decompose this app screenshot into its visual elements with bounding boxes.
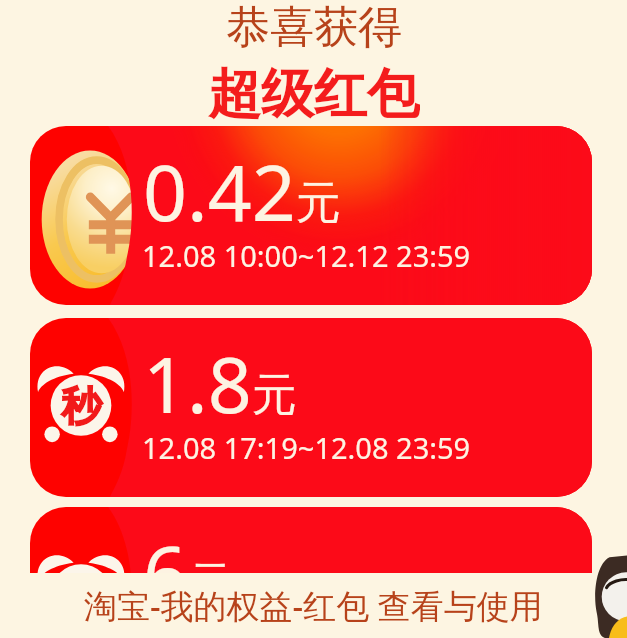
button[interactable]: 0.42: [30, 126, 592, 305]
staticText: 12.08 10:00~12.12 23:59: [142, 236, 471, 275]
other: Mascot: [581, 552, 627, 638]
staticText: 12.08 17:19~12.08 23:59: [142, 428, 471, 467]
staticText: 恭喜获得: [226, 0, 402, 54]
staticText: 秒: [61, 381, 101, 431]
staticText: 秒: [61, 570, 101, 620]
staticText: 元: [252, 367, 297, 424]
staticText: 超级红包: [208, 61, 420, 125]
staticText: 1.8: [143, 331, 252, 436]
staticText: 12.08 17:19~12.08 23:59: [142, 617, 471, 638]
staticText: 淘宝-我的权益-红包 查看与使用: [84, 583, 543, 628]
button[interactable]: 秒: [30, 318, 592, 497]
staticText: 元: [188, 556, 233, 613]
button[interactable]: 淘宝-我的权益-红包 查看与使用: [0, 573, 627, 638]
staticText: 元: [296, 175, 341, 232]
staticText: 0.42: [143, 139, 296, 244]
staticText: 6: [143, 520, 188, 625]
button[interactable]: 秒: [30, 507, 592, 638]
